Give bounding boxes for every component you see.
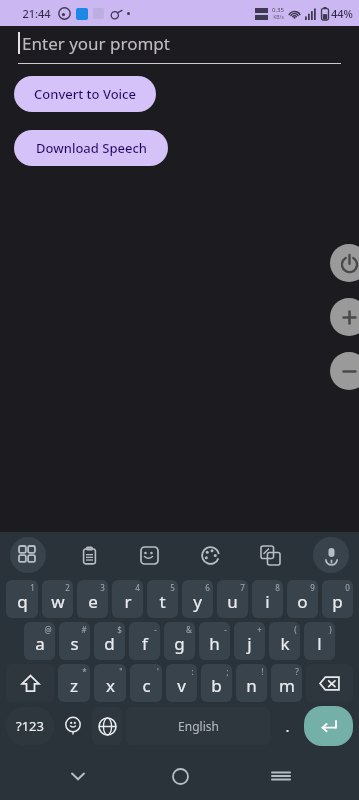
button[interactable]: Enter <box>304 706 353 746</box>
button[interactable]: Home <box>156 752 204 800</box>
staticText: i <box>265 590 270 613</box>
button[interactable]: Volume up <box>330 298 359 336</box>
staticText: q <box>17 590 28 613</box>
staticText: : <box>191 666 194 677</box>
staticText: ?123 <box>16 717 44 735</box>
staticText: 1 <box>30 582 35 593</box>
staticText: o <box>297 590 308 613</box>
button[interactable]: . <box>274 707 300 745</box>
button[interactable]: v <box>166 664 197 702</box>
staticText: 8 <box>275 582 280 593</box>
button[interactable]: o <box>287 580 318 618</box>
button[interactable]: s <box>59 622 90 660</box>
staticText: ( <box>294 624 297 635</box>
staticText: w <box>51 590 65 613</box>
button[interactable]: Recent apps <box>257 752 305 800</box>
button[interactable]: Download Speech <box>14 130 168 166</box>
staticText: a <box>35 632 45 655</box>
button[interactable]: Power <box>330 244 359 282</box>
staticText: " <box>119 666 123 677</box>
staticText: English <box>178 718 219 734</box>
button[interactable]: y <box>182 580 213 618</box>
staticText: # <box>81 624 87 635</box>
button[interactable]: Convert to Voice <box>14 76 156 112</box>
staticText: ? <box>295 666 299 677</box>
staticText: e <box>88 590 98 613</box>
staticText: Enter your prompt <box>22 32 170 55</box>
button[interactable]: Voice input <box>313 537 349 573</box>
button[interactable]: Clipboard <box>71 537 107 573</box>
staticText: 21:44 <box>22 6 51 21</box>
staticText: n <box>246 674 257 697</box>
button[interactable]: Translate <box>252 537 288 573</box>
staticText: g <box>174 632 185 655</box>
staticText: 44% <box>331 6 353 21</box>
button[interactable]: j <box>234 622 265 660</box>
button[interactable]: l <box>304 622 335 660</box>
button[interactable]: Clipboard grid <box>10 537 46 573</box>
staticText: f <box>142 632 148 655</box>
staticText: ) <box>329 624 332 635</box>
button[interactable]: English <box>126 707 270 745</box>
button[interactable]: t <box>147 580 178 618</box>
button[interactable]: i <box>252 580 283 618</box>
button[interactable]: Shift <box>6 664 54 702</box>
staticText: z <box>70 674 78 697</box>
button[interactable]: Hide keyboard <box>54 752 102 800</box>
staticText: 9 <box>310 582 315 593</box>
button[interactable]: w <box>42 580 73 618</box>
staticText: r <box>124 590 132 613</box>
staticText: v <box>177 674 186 697</box>
button[interactable]: x <box>94 664 126 702</box>
button[interactable]: Change language <box>92 707 122 745</box>
button[interactable]: Themes <box>192 537 228 573</box>
staticText: s <box>70 632 79 655</box>
staticText: ! <box>261 666 264 677</box>
button[interactable]: g <box>164 622 195 660</box>
button[interactable]: h <box>199 622 230 660</box>
button[interactable]: Emoji <box>58 707 88 745</box>
staticText: 3 <box>100 582 105 593</box>
button[interactable]: q <box>6 580 38 618</box>
button[interactable]: m <box>271 664 302 702</box>
button[interactable]: Volume down <box>330 352 359 390</box>
staticText: Convert to Voice <box>34 85 136 103</box>
staticText: b <box>211 674 222 697</box>
button[interactable]: f <box>129 622 160 660</box>
staticText: 0 <box>345 582 350 593</box>
button[interactable]: e <box>77 580 108 618</box>
staticText: $ <box>117 624 122 635</box>
staticText: y <box>193 590 202 613</box>
staticText: ' <box>157 666 159 677</box>
button[interactable]: u <box>217 580 248 618</box>
button[interactable]: Stickers <box>131 537 167 573</box>
button[interactable]: z <box>58 664 90 702</box>
staticText: ; <box>226 666 229 677</box>
staticText: u <box>227 590 238 613</box>
button[interactable]: p <box>322 580 353 618</box>
button[interactable]: n <box>236 664 267 702</box>
staticText: j <box>247 632 252 655</box>
staticText: x <box>106 674 115 697</box>
staticText: h <box>209 632 220 655</box>
staticText: 7 <box>240 582 245 593</box>
button[interactable]: b <box>201 664 232 702</box>
button[interactable]: k <box>269 622 300 660</box>
staticText: t <box>159 590 166 613</box>
staticText: p <box>332 590 343 613</box>
button[interactable]: c <box>130 664 162 702</box>
staticText: d <box>104 632 115 655</box>
staticText: c <box>142 674 151 697</box>
button[interactable]: d <box>94 622 125 660</box>
staticText: @ <box>44 624 52 635</box>
staticText: - <box>224 624 227 635</box>
staticText: 0.35 <box>272 6 284 14</box>
staticText: 5 <box>170 582 175 593</box>
staticText: Download Speech <box>36 139 147 157</box>
staticText: 6 <box>205 582 210 593</box>
button[interactable]: a <box>24 622 55 660</box>
button[interactable]: r <box>112 580 143 618</box>
button[interactable]: ?123 <box>6 707 54 745</box>
button[interactable]: Backspace <box>306 664 353 702</box>
staticText: & <box>186 624 192 635</box>
